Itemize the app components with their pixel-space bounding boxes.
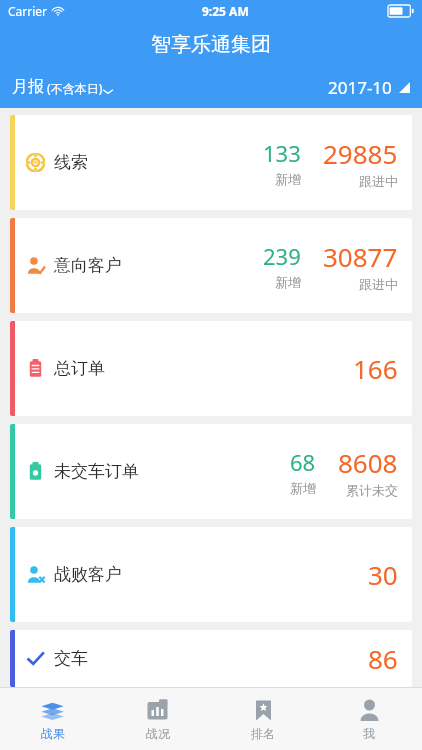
staticText: 新增 (290, 480, 316, 496)
staticText: 战果 (41, 726, 65, 741)
button[interactable]: 意向客户 (10, 218, 412, 313)
staticText: 战败客户 (54, 564, 122, 585)
staticText: 未交车订单 (54, 461, 139, 482)
button[interactable]: 排名 (210, 698, 316, 741)
button[interactable]: 战败客户 (10, 527, 412, 622)
button[interactable]: 我 (316, 698, 422, 741)
staticText: 排名 (251, 726, 275, 741)
staticText: 新增 (275, 171, 301, 187)
button[interactable]: 线索 (10, 115, 412, 210)
staticText: 跟进中 (359, 276, 398, 292)
staticText: 86 (368, 641, 398, 676)
staticText: 30 (368, 557, 398, 592)
staticText: 8608 (338, 445, 398, 480)
button[interactable]: 战果 (0, 698, 105, 741)
button[interactable]: 未交车订单 (10, 424, 412, 519)
staticText: 239 (263, 241, 301, 271)
button[interactable]: 总订单 (10, 321, 412, 416)
staticText: 跟进中 (359, 173, 398, 189)
button[interactable]: 战况 (105, 698, 210, 741)
button[interactable]: 月报 (0, 71, 121, 103)
staticText: 9:25 AM (202, 3, 249, 19)
staticText: 133 (263, 138, 301, 168)
staticText: Carrier (8, 3, 48, 19)
staticText: 总订单 (54, 358, 105, 379)
staticText: 累计未交 (346, 482, 398, 498)
staticText: 我 (363, 726, 375, 741)
staticText: 新增 (275, 274, 301, 290)
staticText: 意向客户 (54, 255, 122, 276)
staticText: 29885 (323, 136, 398, 171)
staticText: 166 (353, 351, 398, 386)
staticText: 2017-10 (328, 76, 392, 99)
staticText: 月报 (12, 77, 44, 97)
button[interactable]: 交车 (10, 630, 412, 687)
staticText: (不含本日) (44, 80, 103, 96)
staticText: 智享乐通集团 (151, 32, 271, 57)
staticText: 交车 (54, 648, 88, 669)
staticText: 战况 (146, 726, 170, 741)
staticText: 线索 (54, 152, 88, 173)
button[interactable]: 2017-10 (320, 70, 422, 105)
staticText: 68 (290, 447, 316, 477)
staticText: 30877 (323, 239, 398, 274)
